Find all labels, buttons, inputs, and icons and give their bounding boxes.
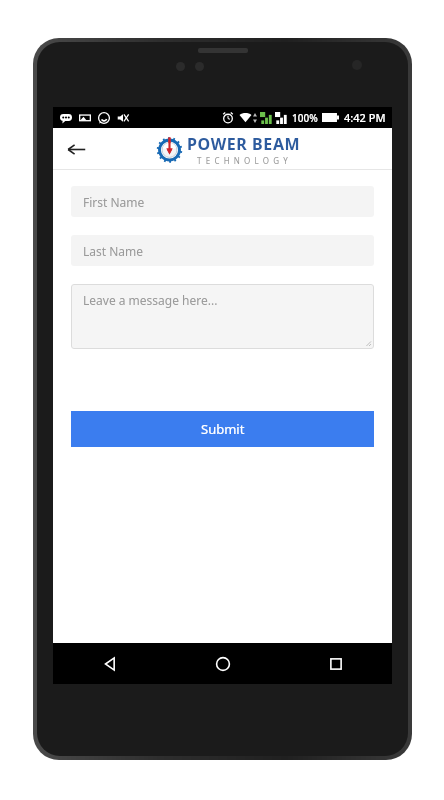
staticText: Last Name: [83, 243, 144, 259]
button[interactable]: Submit: [71, 411, 374, 447]
button[interactable]: POWER BEAM: [157, 133, 301, 166]
staticText: Leave a message here...: [83, 292, 218, 308]
staticText: First Name: [83, 194, 145, 210]
button[interactable]: Back: [53, 643, 166, 684]
button[interactable]: Back: [59, 132, 93, 166]
button[interactable]: First Name: [71, 186, 374, 217]
staticText: TECHNOLOGY: [197, 155, 292, 166]
button[interactable]: Leave a message here...: [71, 284, 374, 349]
staticText: POWER BEAM: [187, 133, 301, 155]
staticText: 4:42 PM: [344, 110, 386, 125]
button[interactable]: Recents: [279, 643, 392, 684]
staticText: Submit: [201, 420, 245, 438]
staticText: 100%: [292, 111, 318, 125]
button[interactable]: Last Name: [71, 235, 374, 266]
button[interactable]: Home: [166, 643, 279, 684]
